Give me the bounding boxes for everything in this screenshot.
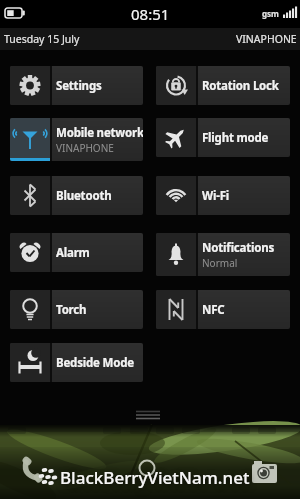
button[interactable]: Flight mode <box>156 118 290 157</box>
staticText: Flight mode <box>202 130 269 146</box>
staticText: Bluetooth <box>56 188 112 204</box>
button[interactable]: Bluetooth <box>10 176 143 215</box>
staticText: VINAPHONE <box>56 141 114 155</box>
staticText: NFC <box>202 302 225 318</box>
staticText: 08:51 <box>131 4 170 24</box>
button[interactable]: Wi-Fi <box>156 176 290 215</box>
staticText: Normal <box>202 256 238 270</box>
button[interactable]: Notifications <box>156 233 290 276</box>
staticText: Alarm <box>56 245 90 261</box>
button[interactable]: Bedside Mode <box>10 343 143 382</box>
staticText: Mobile network <box>56 125 143 141</box>
button[interactable]: Mobile network <box>10 118 143 161</box>
staticText: gsm <box>262 8 279 19</box>
staticText: VINAPHONE <box>236 32 297 46</box>
button[interactable]: Torch <box>10 290 143 329</box>
button[interactable]: Alarm <box>10 233 143 272</box>
staticText: Wi-Fi <box>202 188 229 204</box>
button[interactable]: NFC <box>156 290 290 329</box>
staticText: Settings <box>56 78 102 94</box>
staticText: Torch <box>56 302 87 318</box>
button[interactable]: Settings <box>10 66 143 105</box>
staticText: Tuesday 15 July <box>4 32 80 46</box>
button[interactable]: Rotation Lock <box>156 66 290 105</box>
staticText: Rotation Lock <box>202 78 279 94</box>
staticText: Notifications <box>202 240 275 256</box>
staticText: BlackBerryVietNam.net <box>60 466 250 489</box>
staticText: Bedside Mode <box>56 355 134 371</box>
